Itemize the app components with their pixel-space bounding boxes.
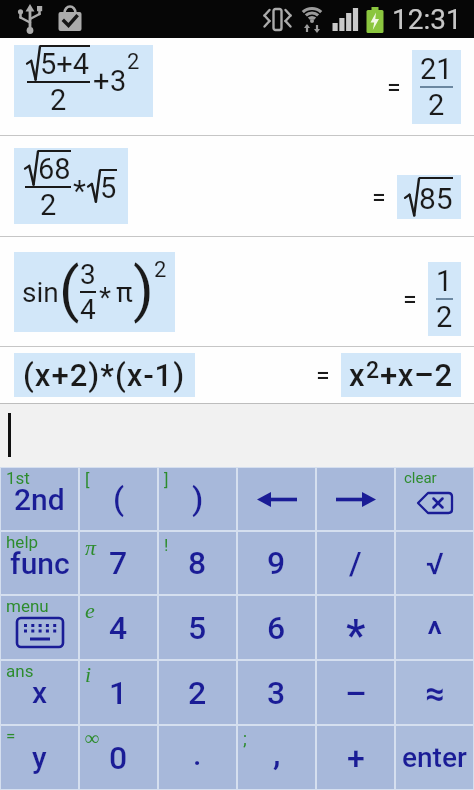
staticText: √ xyxy=(426,546,444,581)
staticText: ) xyxy=(133,254,154,324)
button[interactable]: * xyxy=(317,596,394,659)
staticText: ( xyxy=(59,254,80,324)
staticText: 1 xyxy=(109,674,128,712)
staticText: π xyxy=(85,535,97,559)
staticText: = xyxy=(372,183,386,212)
button[interactable]: func xyxy=(1,532,78,594)
button[interactable]: sin xyxy=(14,252,175,332)
staticText: 5+4 xyxy=(40,47,90,81)
staticText: 6 xyxy=(267,609,286,647)
button[interactable]: x xyxy=(341,353,461,397)
staticText: 1 xyxy=(436,264,453,298)
button[interactable]: 8 xyxy=(159,532,236,594)
staticText: menu xyxy=(6,596,49,616)
staticText: 0 xyxy=(109,739,128,777)
staticText: * xyxy=(99,281,112,314)
staticText: (x+2)*(x-1) xyxy=(23,357,186,393)
staticText: 1st xyxy=(6,468,30,488)
button[interactable]: ≈ xyxy=(396,661,473,724)
staticText: π xyxy=(116,276,133,309)
staticText: . xyxy=(193,737,202,772)
button[interactable]: ^ xyxy=(396,596,473,659)
button[interactable]: 4 xyxy=(80,596,157,659)
button[interactable]: clear xyxy=(396,468,473,530)
staticText: 2 xyxy=(40,188,57,222)
button[interactable]: / xyxy=(317,532,394,594)
staticText: – xyxy=(345,673,367,713)
staticText: 3 xyxy=(110,64,127,98)
staticText: 2nd xyxy=(14,482,65,517)
button[interactable]: 2nd xyxy=(1,468,78,530)
button[interactable]: 2 xyxy=(159,661,236,724)
button[interactable]: 6 xyxy=(238,596,315,659)
button[interactable]: 7 xyxy=(80,532,157,594)
staticText: e xyxy=(85,598,95,622)
button[interactable]: ( xyxy=(80,468,157,530)
staticText: = xyxy=(403,285,417,314)
staticText: enter xyxy=(402,741,467,774)
staticText: + xyxy=(347,739,365,777)
staticText: 85 xyxy=(419,181,453,216)
button[interactable]: 5+4 xyxy=(14,45,153,117)
staticText: 2 xyxy=(428,88,445,122)
staticText: 12:31 xyxy=(392,3,462,36)
button[interactable]: x xyxy=(1,661,78,724)
button[interactable]: , xyxy=(238,726,315,789)
button[interactable]: 68 xyxy=(14,148,128,224)
staticText: 5 xyxy=(188,609,207,647)
staticText: ( xyxy=(113,480,125,518)
staticText: ≈ xyxy=(425,673,445,713)
staticText: ! xyxy=(164,535,169,555)
staticText: = xyxy=(387,73,401,102)
staticText: ans xyxy=(6,661,34,681)
button[interactable] xyxy=(238,468,315,530)
staticText: 4 xyxy=(109,609,128,647)
button[interactable]: 1 xyxy=(428,262,461,336)
button[interactable]: ) xyxy=(159,468,236,530)
button[interactable]: 85 xyxy=(397,175,461,219)
staticText: y xyxy=(32,740,47,775)
staticText: * xyxy=(346,610,366,662)
staticText: x xyxy=(32,675,48,710)
staticText: 5 xyxy=(100,171,117,203)
staticText: 2 xyxy=(154,257,167,283)
staticText: func xyxy=(10,546,70,581)
staticText: ) xyxy=(192,480,204,518)
staticText: i xyxy=(85,662,92,686)
staticText: clear xyxy=(404,469,437,487)
staticText: help xyxy=(6,532,39,552)
button[interactable]: 21 xyxy=(412,50,461,124)
button[interactable]: – xyxy=(317,661,394,724)
button[interactable]: (x+2)*(x-1) xyxy=(14,353,195,397)
button[interactable]: 3 xyxy=(238,661,315,724)
button[interactable]: 9 xyxy=(238,532,315,594)
button[interactable]: 0 xyxy=(80,726,157,789)
staticText: + xyxy=(93,64,110,98)
button[interactable]: 5 xyxy=(159,596,236,659)
staticText: x xyxy=(349,357,366,393)
staticText: ] xyxy=(164,470,169,490)
staticText: , xyxy=(273,733,281,773)
staticText: [ xyxy=(85,470,90,490)
button[interactable] xyxy=(317,468,394,530)
staticText: ; xyxy=(243,728,247,749)
button[interactable]: √ xyxy=(396,532,473,594)
button[interactable]: . xyxy=(159,726,236,789)
staticText: 2 xyxy=(366,357,380,384)
staticText: ∞ xyxy=(85,727,100,749)
staticText: 7 xyxy=(109,544,128,582)
button[interactable]: enter xyxy=(396,726,473,789)
staticText: ^ xyxy=(427,614,443,656)
staticText: 21 xyxy=(420,52,453,86)
button[interactable]: + xyxy=(317,726,394,789)
staticText: 3 xyxy=(80,258,96,291)
button[interactable]: menu xyxy=(1,596,78,659)
staticText: 4 xyxy=(80,293,96,326)
staticText: * xyxy=(73,173,86,208)
button[interactable]: y xyxy=(1,726,78,789)
button[interactable]: 1 xyxy=(80,661,157,724)
staticText: / xyxy=(349,544,362,582)
staticText: 2 xyxy=(436,300,453,334)
staticText: 2 xyxy=(50,83,67,117)
staticText: 68 xyxy=(38,152,71,186)
